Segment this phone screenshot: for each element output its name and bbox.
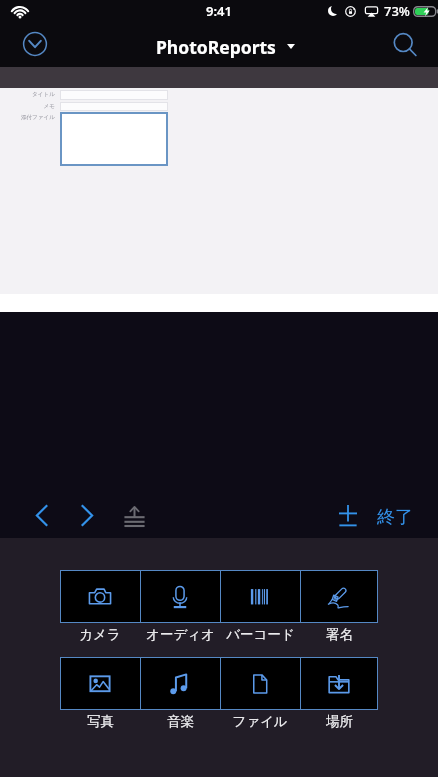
button[interactable]: 終了 (371, 502, 419, 533)
staticText: 添付ファイル (20, 114, 55, 121)
staticText: カメラ (79, 626, 121, 643)
staticText: 署名 (326, 626, 353, 643)
button[interactable]: ファイル (220, 657, 300, 710)
button[interactable]: カメラ (60, 570, 140, 623)
button[interactable]: バーコード (220, 570, 300, 623)
staticText: タイトル (32, 91, 55, 98)
button[interactable]: Search (385, 25, 417, 57)
staticText: メモ (43, 103, 55, 110)
button[interactable]: Share (114, 495, 155, 536)
staticText: PhotoReports (156, 35, 276, 59)
staticText: オーディオ (146, 626, 215, 643)
button[interactable]: Next (67, 495, 108, 536)
staticText: バーコード (226, 626, 295, 643)
staticText: 73% (384, 2, 410, 20)
button[interactable]: オーディオ (140, 570, 220, 623)
button[interactable]: PhotoReports (156, 35, 295, 59)
button[interactable]: Collapse (19, 28, 51, 60)
staticText: 音楽 (167, 713, 194, 730)
staticText: 場所 (326, 713, 353, 730)
staticText: 終了 (377, 506, 413, 529)
staticText: 9:41 (206, 2, 232, 20)
button[interactable]: 写真 (60, 657, 140, 710)
button[interactable]: Previous (21, 495, 62, 536)
button[interactable]: 場所 (300, 657, 378, 710)
staticText: 写真 (87, 713, 114, 730)
button[interactable]: Add (327, 495, 368, 536)
staticText: ファイル (232, 713, 288, 730)
button[interactable]: 署名 (300, 570, 378, 623)
button[interactable]: 音楽 (140, 657, 220, 710)
